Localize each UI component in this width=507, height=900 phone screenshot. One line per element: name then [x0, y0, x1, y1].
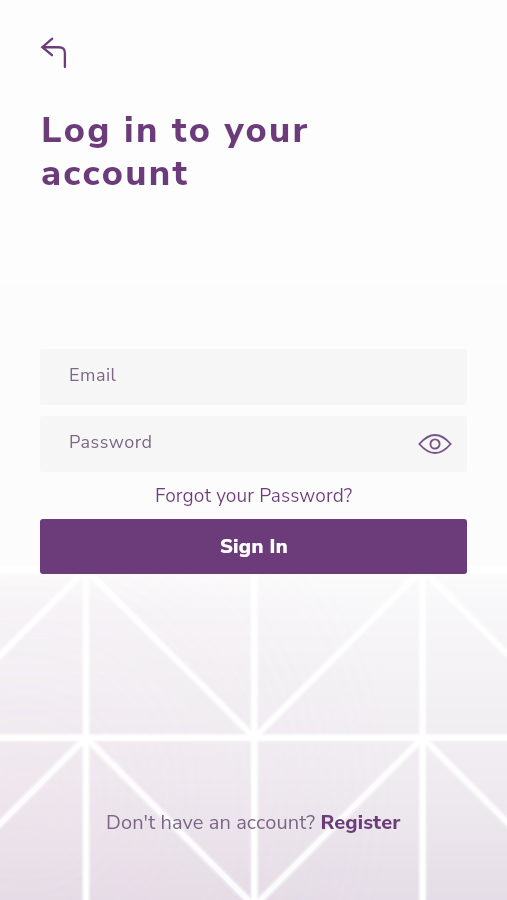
staticText: Don't have an account? Register: [106, 809, 401, 836]
staticText: Password: [69, 430, 153, 455]
button[interactable]: Password: [40, 416, 467, 472]
button[interactable]: Don't have an account? Register: [100, 806, 407, 839]
staticText: Log in to your account: [41, 106, 310, 197]
button[interactable]: Sign In: [40, 519, 467, 574]
staticText: Forgot your Password?: [155, 483, 353, 509]
button[interactable]: Email: [40, 349, 467, 405]
staticText: Sign In: [220, 533, 288, 560]
staticText: Email: [69, 363, 117, 388]
button[interactable]: Forgot your Password?: [147, 481, 361, 511]
button[interactable]: Show password: [415, 424, 455, 464]
button[interactable]: Back: [29, 25, 81, 77]
